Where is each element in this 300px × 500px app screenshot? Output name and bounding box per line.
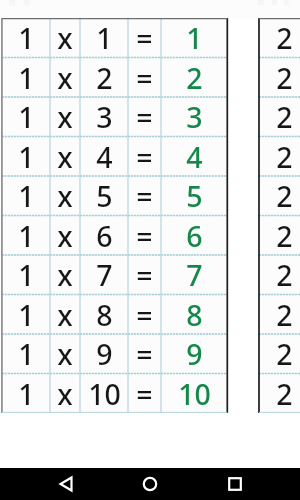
staticText: = xyxy=(136,138,153,177)
staticText: = xyxy=(136,256,153,295)
button[interactable]: 2 xyxy=(259,216,300,256)
staticText: 2 xyxy=(276,256,293,295)
staticText: 7 xyxy=(186,256,203,295)
staticText: 2 xyxy=(276,59,293,98)
button[interactable]: 2 xyxy=(259,137,300,177)
staticText: 1 xyxy=(18,256,35,295)
staticText: 1 xyxy=(18,375,35,413)
button[interactable]: 2 xyxy=(259,97,300,137)
staticText: 3 xyxy=(186,98,203,137)
button[interactable]: 1 xyxy=(0,255,227,295)
staticText: 10 xyxy=(88,375,121,413)
button[interactable]: 2 xyxy=(259,255,300,295)
staticText: = xyxy=(136,98,153,137)
staticText: 3 xyxy=(96,98,113,137)
staticText: 2 xyxy=(276,375,293,413)
button[interactable]: Recent apps xyxy=(219,468,251,500)
staticText: 1 xyxy=(18,98,35,137)
button[interactable]: Back xyxy=(50,468,82,500)
staticText: 8 xyxy=(186,296,203,335)
staticText: x xyxy=(57,296,73,335)
button[interactable]: 2 xyxy=(259,58,300,98)
staticText: 4 xyxy=(186,138,203,177)
staticText: 9 xyxy=(186,335,203,374)
staticText: = xyxy=(136,59,153,98)
staticText: 2 xyxy=(186,59,203,98)
staticText: 4 xyxy=(96,138,113,177)
staticText: 1 xyxy=(18,19,35,58)
staticText: 6 xyxy=(96,217,113,256)
staticText: = xyxy=(136,19,153,58)
staticText: 9 xyxy=(96,335,113,374)
button[interactable]: 1 xyxy=(0,58,227,98)
staticText: 2 xyxy=(276,217,293,256)
staticText: 5 xyxy=(186,177,203,216)
staticText: 2 xyxy=(276,98,293,137)
staticText: 1 xyxy=(96,19,113,58)
staticText: 2 xyxy=(96,59,113,98)
staticText: x xyxy=(57,98,73,137)
button[interactable]: 1 xyxy=(0,97,227,137)
staticText: x xyxy=(57,19,73,58)
staticText: 6 xyxy=(186,217,203,256)
staticText: 2 xyxy=(276,138,293,177)
staticText: 8 xyxy=(96,296,113,335)
staticText: x xyxy=(57,138,73,177)
button[interactable]: 1 xyxy=(0,176,227,216)
button[interactable]: 2 xyxy=(259,18,300,58)
button[interactable]: 1 xyxy=(0,334,227,374)
staticText: 2 xyxy=(276,177,293,216)
staticText: = xyxy=(136,375,153,413)
staticText: x xyxy=(57,59,73,98)
staticText: = xyxy=(136,335,153,374)
staticText: = xyxy=(136,217,153,256)
staticText: x xyxy=(57,177,73,216)
staticText: 1 xyxy=(186,19,203,58)
button[interactable]: 1 xyxy=(0,374,227,413)
staticText: 5 xyxy=(96,177,113,216)
staticText: = xyxy=(136,296,153,335)
staticText: 1 xyxy=(18,138,35,177)
button[interactable]: Home xyxy=(134,468,166,500)
staticText: 2 xyxy=(276,335,293,374)
button[interactable]: 2 xyxy=(259,176,300,216)
staticText: 1 xyxy=(18,177,35,216)
button[interactable]: 1 xyxy=(0,137,227,177)
button[interactable]: 2 xyxy=(259,295,300,335)
staticText: 1 xyxy=(18,296,35,335)
staticText: 10 xyxy=(178,375,211,413)
button[interactable]: 1 xyxy=(0,18,227,58)
button[interactable]: 1 xyxy=(0,216,227,256)
staticText: x xyxy=(57,256,73,295)
staticText: 1 xyxy=(18,335,35,374)
staticText: x xyxy=(57,335,73,374)
button[interactable]: 2 xyxy=(259,374,300,413)
staticText: 1 xyxy=(18,59,35,98)
staticText: 2 xyxy=(276,296,293,335)
staticText: 7 xyxy=(96,256,113,295)
button[interactable]: 2 xyxy=(259,334,300,374)
button[interactable]: 1 xyxy=(0,295,227,335)
staticText: x xyxy=(57,375,73,413)
staticText: x xyxy=(57,217,73,256)
staticText: = xyxy=(136,177,153,216)
staticText: 2 xyxy=(276,19,293,58)
staticText: 1 xyxy=(18,217,35,256)
